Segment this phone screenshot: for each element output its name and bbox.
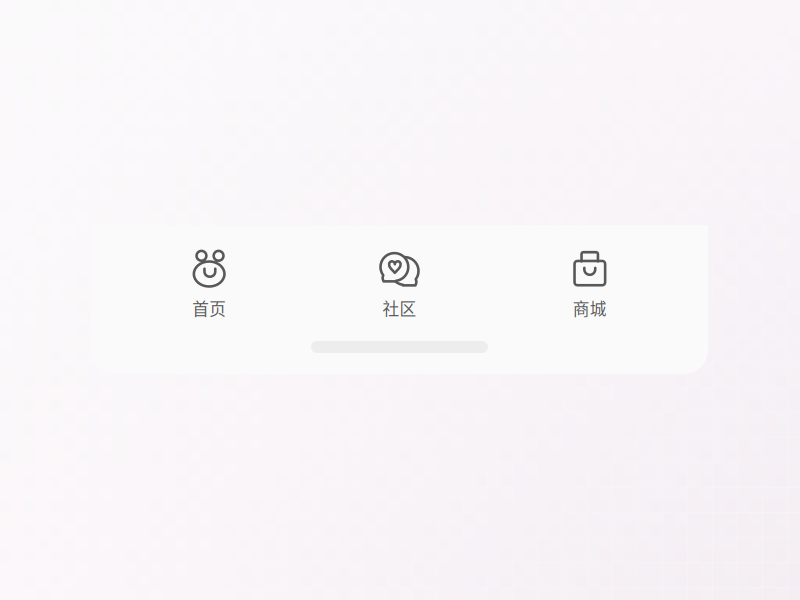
staticText: 社区 bbox=[382, 296, 416, 320]
button[interactable]: 首页 bbox=[114, 249, 304, 320]
staticText: 首页 bbox=[192, 296, 226, 320]
staticText: 商城 bbox=[573, 296, 607, 320]
button[interactable]: 社区 bbox=[304, 249, 495, 320]
button[interactable]: 商城 bbox=[495, 249, 685, 320]
